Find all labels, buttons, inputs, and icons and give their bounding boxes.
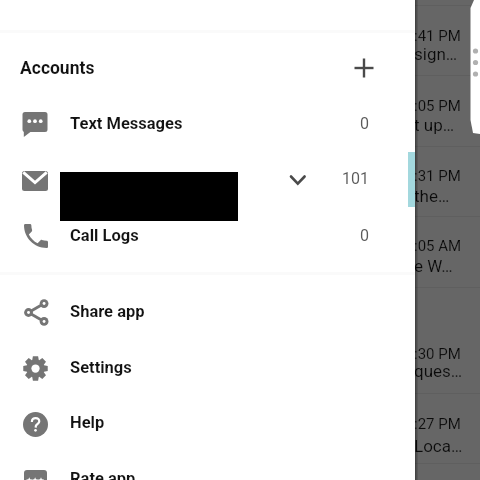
staticText: ques… [414, 361, 463, 381]
staticText: Loca… [414, 436, 463, 456]
button[interactable]: Add account [349, 53, 379, 83]
staticText: Help [70, 413, 105, 432]
button[interactable] [0, 397, 415, 453]
staticText: Share app [70, 302, 145, 321]
staticText: the… [414, 186, 450, 206]
staticText: :41 PM [414, 27, 461, 45]
staticText: e W… [414, 256, 453, 276]
button[interactable] [0, 341, 415, 397]
staticText: :30 PM [414, 345, 461, 363]
button[interactable] [0, 152, 415, 208]
button[interactable] [0, 46, 415, 91]
staticText: sign… [414, 44, 458, 64]
staticText: t up… [414, 115, 455, 135]
staticText: Settings [70, 358, 132, 377]
staticText: Accounts [20, 58, 95, 79]
staticText: Call Logs [70, 226, 139, 245]
staticText: :05 PM [414, 97, 461, 115]
staticText: :27 PM [414, 415, 461, 433]
button[interactable] [0, 208, 415, 264]
staticText: 0 [320, 226, 369, 245]
button[interactable] [0, 285, 415, 341]
staticText: :31 PM [414, 167, 461, 185]
staticText: Rate app [70, 469, 136, 480]
button[interactable] [0, 453, 415, 480]
button[interactable]: Expand accounts [286, 168, 310, 192]
staticText: :05 AM [414, 237, 462, 255]
staticText: Text Messages [70, 114, 183, 133]
button[interactable] [0, 96, 415, 152]
staticText: 101 [320, 169, 369, 188]
staticText: 0 [320, 114, 369, 133]
